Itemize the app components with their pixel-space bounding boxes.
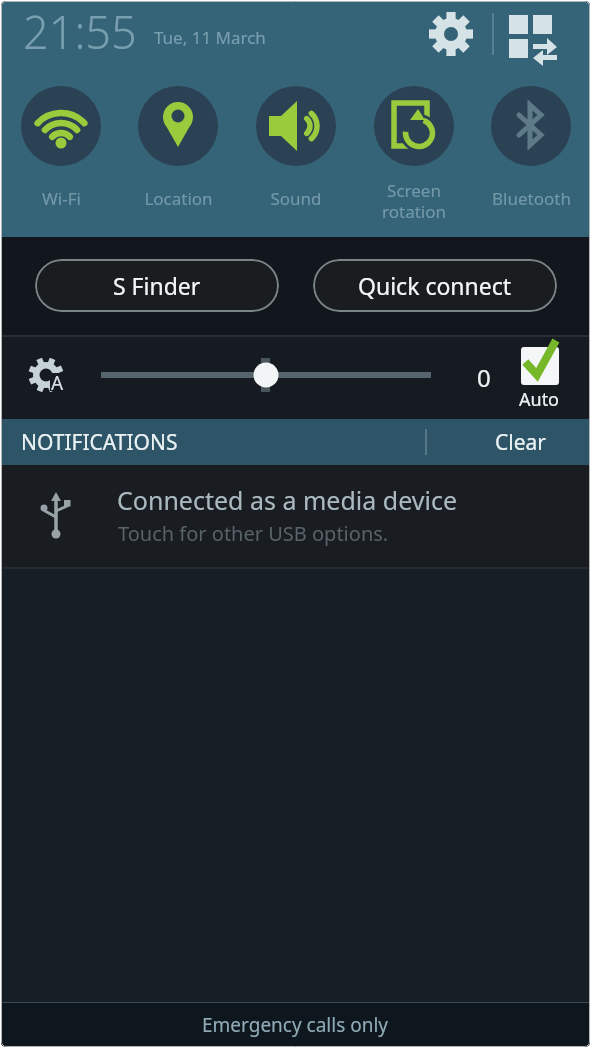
staticText: 21:55 (23, 1, 137, 62)
button[interactable]: Quick connect (313, 259, 557, 312)
staticText: Auto (519, 387, 560, 412)
button[interactable]: S Finder (35, 259, 279, 312)
staticText: 0 (477, 361, 491, 394)
button[interactable]: Clear (451, 419, 590, 465)
staticText: Bluetooth (492, 187, 571, 210)
button[interactable] (21, 86, 101, 166)
staticText: Connected as a media device (117, 483, 458, 517)
button[interactable] (256, 86, 336, 166)
button[interactable]: Connected as a media device (1, 465, 590, 567)
staticText: Emergency calls only (202, 1012, 389, 1038)
staticText: Sound (270, 187, 322, 210)
staticText: Touch for other USB options. (118, 520, 389, 547)
staticText: Tue, 11 March (154, 26, 266, 49)
staticText: S Finder (113, 270, 201, 301)
staticText: Screen rotation (382, 179, 446, 223)
button[interactable] (425, 8, 477, 60)
button[interactable] (491, 86, 571, 166)
staticText: Location (144, 187, 213, 210)
button[interactable] (507, 11, 557, 59)
staticText: NOTIFICATIONS (21, 428, 178, 457)
button[interactable] (138, 86, 218, 166)
button[interactable] (374, 86, 454, 166)
staticText: Wi-Fi (42, 187, 81, 210)
staticText: Clear (495, 428, 546, 457)
staticText: Quick connect (358, 270, 512, 301)
button[interactable] (521, 347, 559, 385)
staticText: A (51, 370, 64, 396)
